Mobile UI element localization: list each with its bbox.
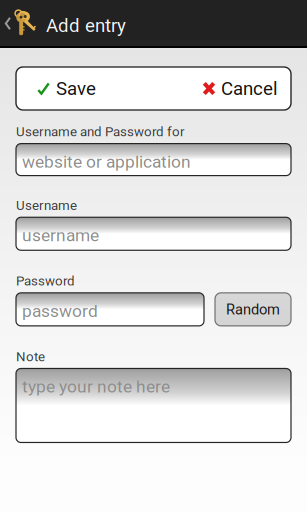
staticText: password bbox=[22, 301, 98, 321]
staticText: Note bbox=[16, 349, 45, 364]
staticText: Username bbox=[16, 198, 77, 213]
staticText: Cancel bbox=[221, 78, 278, 99]
button[interactable]: Save bbox=[16, 67, 104, 110]
button[interactable]: Random bbox=[215, 293, 291, 326]
staticText: Random bbox=[226, 301, 280, 318]
staticText: Password bbox=[16, 273, 75, 289]
staticText: type your note here bbox=[22, 376, 170, 397]
button[interactable]: Back bbox=[0, 0, 42, 46]
staticText: website or application bbox=[22, 152, 191, 172]
staticText: Save bbox=[56, 78, 96, 99]
staticText: Username and Password for bbox=[16, 124, 185, 140]
staticText: Add entry bbox=[46, 15, 126, 36]
button[interactable]: Cancel bbox=[194, 67, 291, 110]
staticText: username bbox=[22, 225, 99, 245]
